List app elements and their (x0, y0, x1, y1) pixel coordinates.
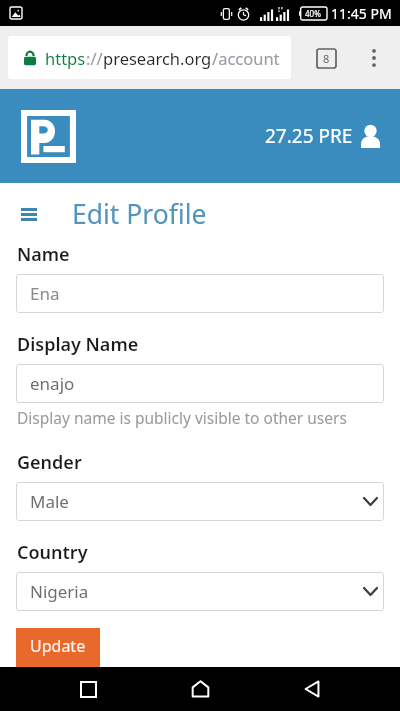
button[interactable]: Tabs (309, 41, 343, 75)
button[interactable]: enajo (16, 364, 384, 403)
staticText: presearch.org (103, 47, 212, 69)
staticText: Male (30, 490, 69, 513)
button[interactable]: More options (357, 41, 391, 75)
staticText: 8 (323, 51, 330, 66)
button[interactable]: Recent apps (64, 667, 112, 711)
staticText: Display name is publicly visible to othe… (17, 407, 347, 428)
staticText: https (45, 47, 86, 69)
button[interactable]: https (8, 36, 291, 79)
staticText: Update (30, 635, 86, 657)
staticText: enajo (30, 372, 75, 395)
staticText: :// (86, 47, 103, 69)
staticText: Country (17, 540, 88, 565)
staticText: 27.25 PRE (265, 123, 353, 149)
staticText: Ena (30, 282, 60, 305)
button[interactable]: Account (361, 125, 380, 148)
staticText: Display Name (17, 332, 139, 357)
button[interactable]: Update (16, 628, 100, 668)
button[interactable]: Menu (14, 199, 44, 229)
staticText: Name (17, 242, 70, 267)
staticText: 11:45 PM (331, 4, 392, 23)
staticText: /account (212, 47, 280, 69)
button[interactable]: Back (288, 667, 336, 711)
button[interactable]: Male (16, 482, 384, 521)
staticText: Gender (17, 450, 82, 475)
button[interactable]: Ena (16, 274, 384, 313)
staticText: 40% (305, 8, 321, 19)
button[interactable]: Home (176, 667, 224, 711)
button[interactable]: Nigeria (16, 572, 384, 611)
staticText: Edit Profile (72, 196, 207, 232)
staticText: Nigeria (30, 580, 89, 603)
